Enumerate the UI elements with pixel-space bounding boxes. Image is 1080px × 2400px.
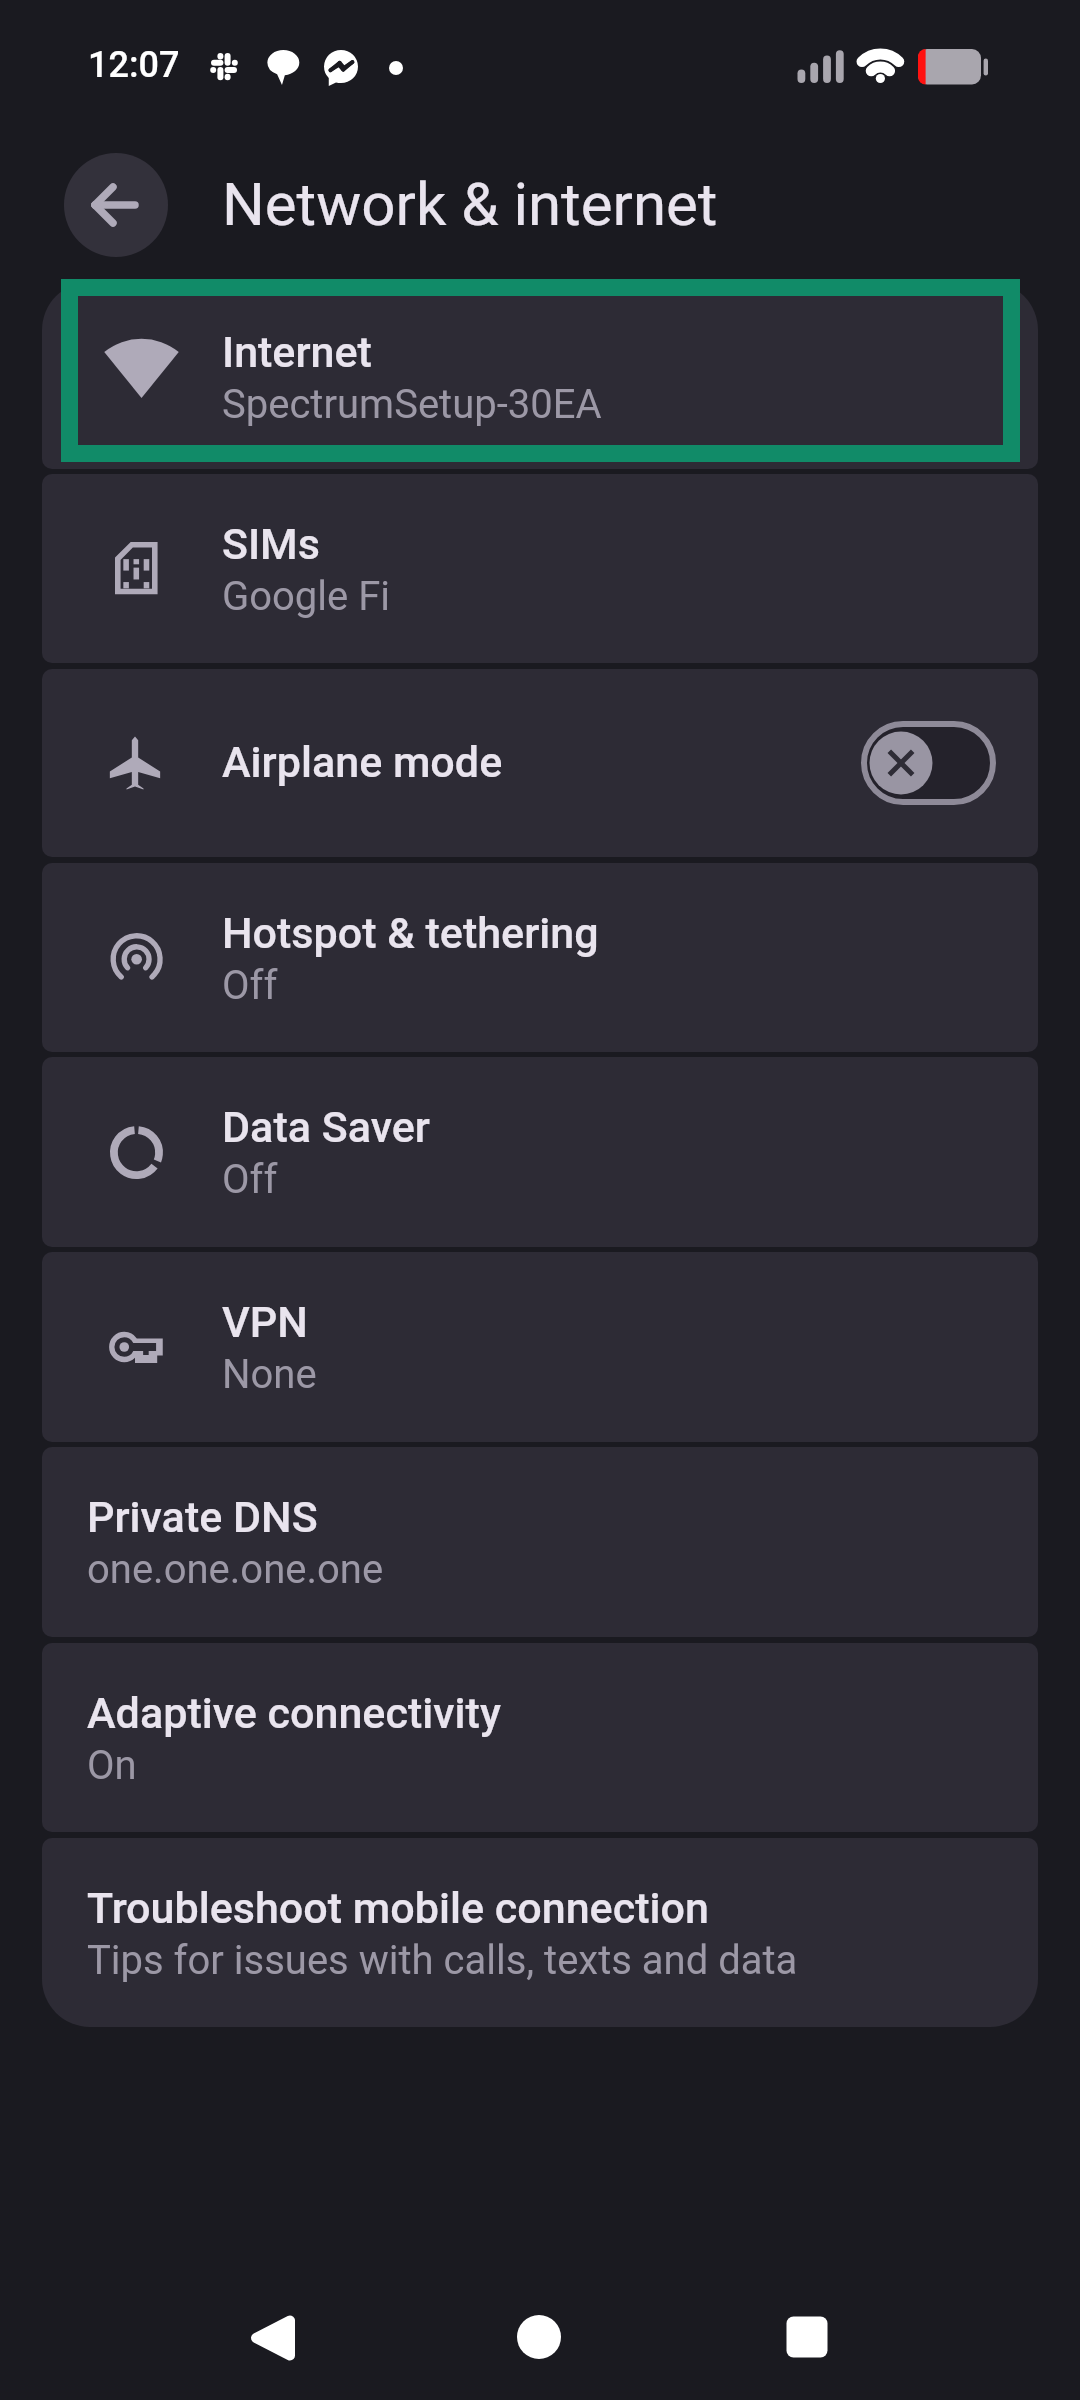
button[interactable]: VPN xyxy=(42,1252,1038,1442)
staticText: SpectrumSetup-30EA xyxy=(222,381,602,428)
button[interactable]: Back xyxy=(64,153,168,257)
staticText: None xyxy=(222,1351,317,1398)
button[interactable]: Airplane mode xyxy=(42,669,1038,857)
button[interactable]: Troubleshoot mobile connection xyxy=(42,1838,1038,2027)
button[interactable]: Recent apps xyxy=(757,2287,857,2387)
staticText: Network & internet xyxy=(222,169,718,239)
staticText: Google Fi xyxy=(222,573,391,620)
button[interactable]: Airplane mode toggle xyxy=(861,721,996,805)
staticText: Tips for issues with calls, texts and da… xyxy=(87,1937,798,1984)
staticText: Adaptive connectivity xyxy=(87,1688,501,1738)
staticText: Off xyxy=(222,1156,278,1203)
button[interactable]: SIMs xyxy=(42,474,1038,663)
staticText: On xyxy=(87,1742,137,1789)
staticText: Off xyxy=(222,962,278,1009)
staticText: Data Saver xyxy=(222,1102,430,1152)
button[interactable]: Data Saver xyxy=(42,1057,1038,1247)
staticText: one.one.one.one xyxy=(87,1546,384,1593)
button[interactable]: Home xyxy=(489,2287,589,2387)
staticText: Private DNS xyxy=(87,1492,318,1542)
staticText: 12:07 xyxy=(88,44,180,86)
staticText: Internet xyxy=(222,327,372,377)
button[interactable]: Adaptive connectivity xyxy=(42,1643,1038,1832)
button[interactable]: Back xyxy=(222,2288,322,2388)
staticText: Hotspot & tethering xyxy=(222,908,599,958)
staticText: Troubleshoot mobile connection xyxy=(87,1883,709,1933)
button[interactable]: Internet xyxy=(42,282,1038,469)
button[interactable]: Private DNS xyxy=(42,1447,1038,1637)
staticText: SIMs xyxy=(222,519,320,569)
staticText: VPN xyxy=(222,1297,308,1347)
staticText: Airplane mode xyxy=(222,737,503,787)
button[interactable]: Hotspot & tethering xyxy=(42,863,1038,1052)
